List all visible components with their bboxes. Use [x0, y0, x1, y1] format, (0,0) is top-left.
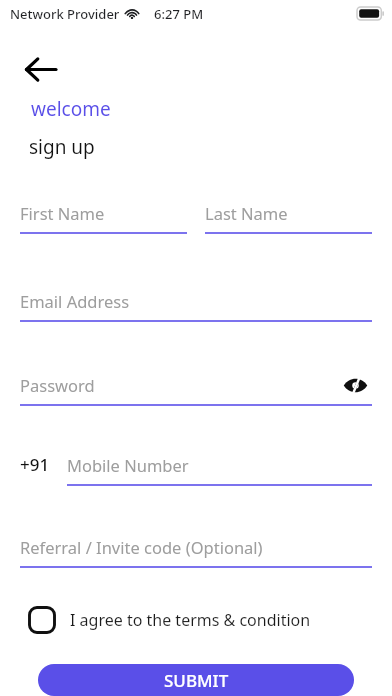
staticText: welcome — [31, 96, 111, 122]
staticText: I agree to the terms & condition — [70, 609, 311, 631]
button[interactable]: I agree to the terms & condition — [28, 606, 364, 634]
button[interactable]: Password — [20, 370, 372, 406]
staticText: Referral / Invite code (Optional) — [20, 536, 263, 558]
staticText: sign up — [29, 134, 95, 160]
staticText: Last Name — [205, 202, 288, 224]
button[interactable]: Show password — [338, 370, 372, 400]
staticText: Mobile Number — [67, 454, 189, 476]
button[interactable]: SUBMIT — [38, 664, 354, 696]
button[interactable]: First Name — [20, 198, 187, 234]
staticText: SUBMIT — [164, 669, 229, 692]
staticText: 6:27 PM — [154, 5, 204, 23]
staticText: Email Address — [20, 290, 130, 312]
button[interactable]: Email Address — [20, 286, 372, 322]
button[interactable]: Last Name — [205, 198, 372, 234]
staticText: Password — [20, 374, 95, 396]
staticText: Network Provider — [10, 5, 120, 23]
staticText: +91 — [20, 453, 50, 476]
staticText: First Name — [20, 202, 105, 224]
button[interactable]: Back — [18, 46, 64, 92]
button[interactable]: Referral / Invite code (Optional) — [20, 532, 372, 568]
button[interactable]: Mobile Number — [67, 450, 372, 486]
